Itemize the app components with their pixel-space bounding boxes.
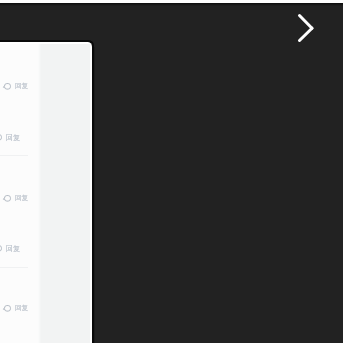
staticText: 回复 <box>6 133 21 142</box>
staticText: 回复 <box>15 304 29 312</box>
button[interactable]: 回复 <box>4 302 30 314</box>
button[interactable]: 回复 <box>4 192 30 204</box>
button[interactable]: 回复 <box>4 80 30 92</box>
staticText: 回复 <box>15 82 29 90</box>
staticText: 回复 <box>6 244 21 253</box>
button[interactable]: 回复 <box>0 242 21 254</box>
staticText: 回复 <box>15 194 29 202</box>
button[interactable]: 回复 <box>0 131 21 143</box>
button[interactable]: Next <box>291 7 321 37</box>
